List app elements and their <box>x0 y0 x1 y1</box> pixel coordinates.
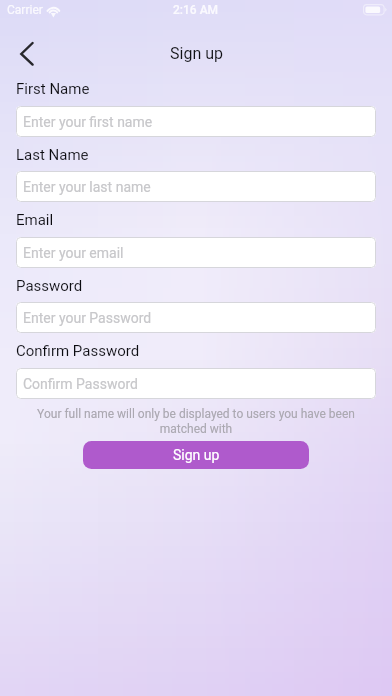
staticText: Sign up <box>170 44 223 63</box>
staticText: Password <box>16 277 83 295</box>
button[interactable]: Back <box>4 34 44 74</box>
staticText: Last Name <box>16 146 89 164</box>
staticText: Enter your Password <box>23 310 152 326</box>
staticText: First Name <box>16 80 90 98</box>
staticText: Enter your email <box>23 245 124 261</box>
button[interactable]: Enter your first name <box>16 106 376 137</box>
staticText: 2:16 AM <box>173 3 219 17</box>
staticText: Your full name will only be displayed to… <box>31 407 361 436</box>
staticText: Carrier <box>7 3 43 17</box>
staticText: Enter your last name <box>23 179 151 195</box>
button[interactable]: Confirm Password <box>16 368 376 399</box>
button[interactable]: Enter your last name <box>16 171 376 202</box>
other: Battery <box>363 4 388 16</box>
staticText: Email <box>16 211 54 229</box>
staticText: Enter your first name <box>23 114 153 130</box>
other: Wi-Fi <box>46 3 61 18</box>
staticText: Confirm Password <box>16 342 140 360</box>
staticText: Confirm Password <box>23 376 138 392</box>
button[interactable]: Enter your Password <box>16 302 376 333</box>
button[interactable]: Sign up <box>83 441 309 469</box>
staticText: Sign up <box>173 447 220 463</box>
button[interactable]: Enter your email <box>16 237 376 268</box>
